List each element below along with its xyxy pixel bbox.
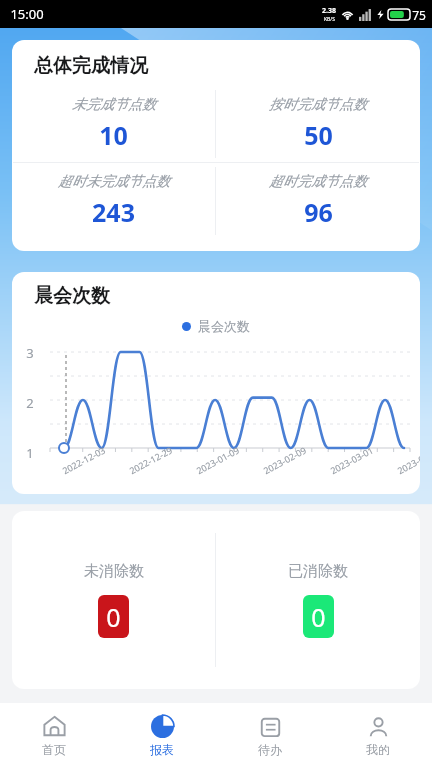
staticText: 报表	[150, 742, 174, 757]
staticText: 总体完成情况	[34, 54, 148, 78]
staticText: KB/S	[324, 16, 335, 23]
staticText: 2022-12-03	[60, 444, 107, 476]
staticText: 10	[99, 118, 128, 152]
staticText: 15:00	[10, 5, 44, 23]
staticText: 2023-01-09	[194, 444, 241, 476]
staticText: 首页	[42, 742, 66, 757]
staticText: 2.38	[322, 6, 336, 16]
staticText: 0	[311, 600, 326, 634]
staticText: 2023-03-01	[328, 444, 375, 476]
staticText: 晨会次数	[34, 284, 110, 308]
staticText: 1	[26, 444, 34, 462]
staticText: 超时未完成节点数	[58, 173, 170, 191]
staticText: 0	[106, 600, 121, 634]
staticText: 75	[412, 7, 426, 23]
staticText: 晨会次数	[198, 318, 250, 334]
staticText: 96	[304, 195, 333, 229]
staticText: 3	[26, 344, 34, 362]
staticText: 超时完成节点数	[269, 173, 367, 191]
staticText: 按时完成节点数	[269, 96, 367, 114]
staticText: 我的	[366, 742, 390, 757]
button[interactable]: 首页	[0, 703, 108, 768]
staticText: 50	[304, 118, 333, 152]
staticText: 已消除数	[288, 562, 348, 581]
button[interactable]: 待办	[216, 703, 324, 768]
staticText: 243	[92, 195, 135, 229]
staticText: 2023-05-04	[395, 444, 420, 476]
staticText: 待办	[258, 742, 282, 757]
staticText: 2022-12-29	[127, 444, 174, 476]
staticText: 未完成节点数	[72, 96, 156, 114]
staticText: 未消除数	[84, 562, 144, 581]
button[interactable]: 报表	[108, 703, 216, 768]
button[interactable]: 我的	[324, 703, 432, 768]
staticText: 2023-02-09	[261, 444, 308, 476]
staticText: 2	[26, 394, 34, 412]
